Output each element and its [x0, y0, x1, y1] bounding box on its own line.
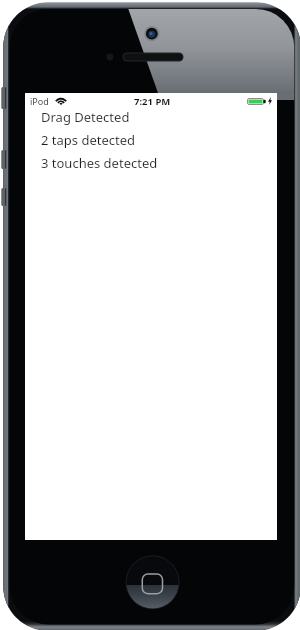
staticText: 2 taps detected [41, 131, 136, 149]
button[interactable]: 2 taps detected [25, 130, 277, 149]
staticText: iPod [30, 95, 49, 107]
staticText: 7:21 PM [134, 95, 171, 108]
staticText: Drag Detected [41, 108, 130, 126]
staticText: 3 touches detected [41, 154, 158, 172]
button[interactable]: Drag Detected [25, 107, 277, 126]
button[interactable]: 3 touches detected [25, 153, 277, 172]
